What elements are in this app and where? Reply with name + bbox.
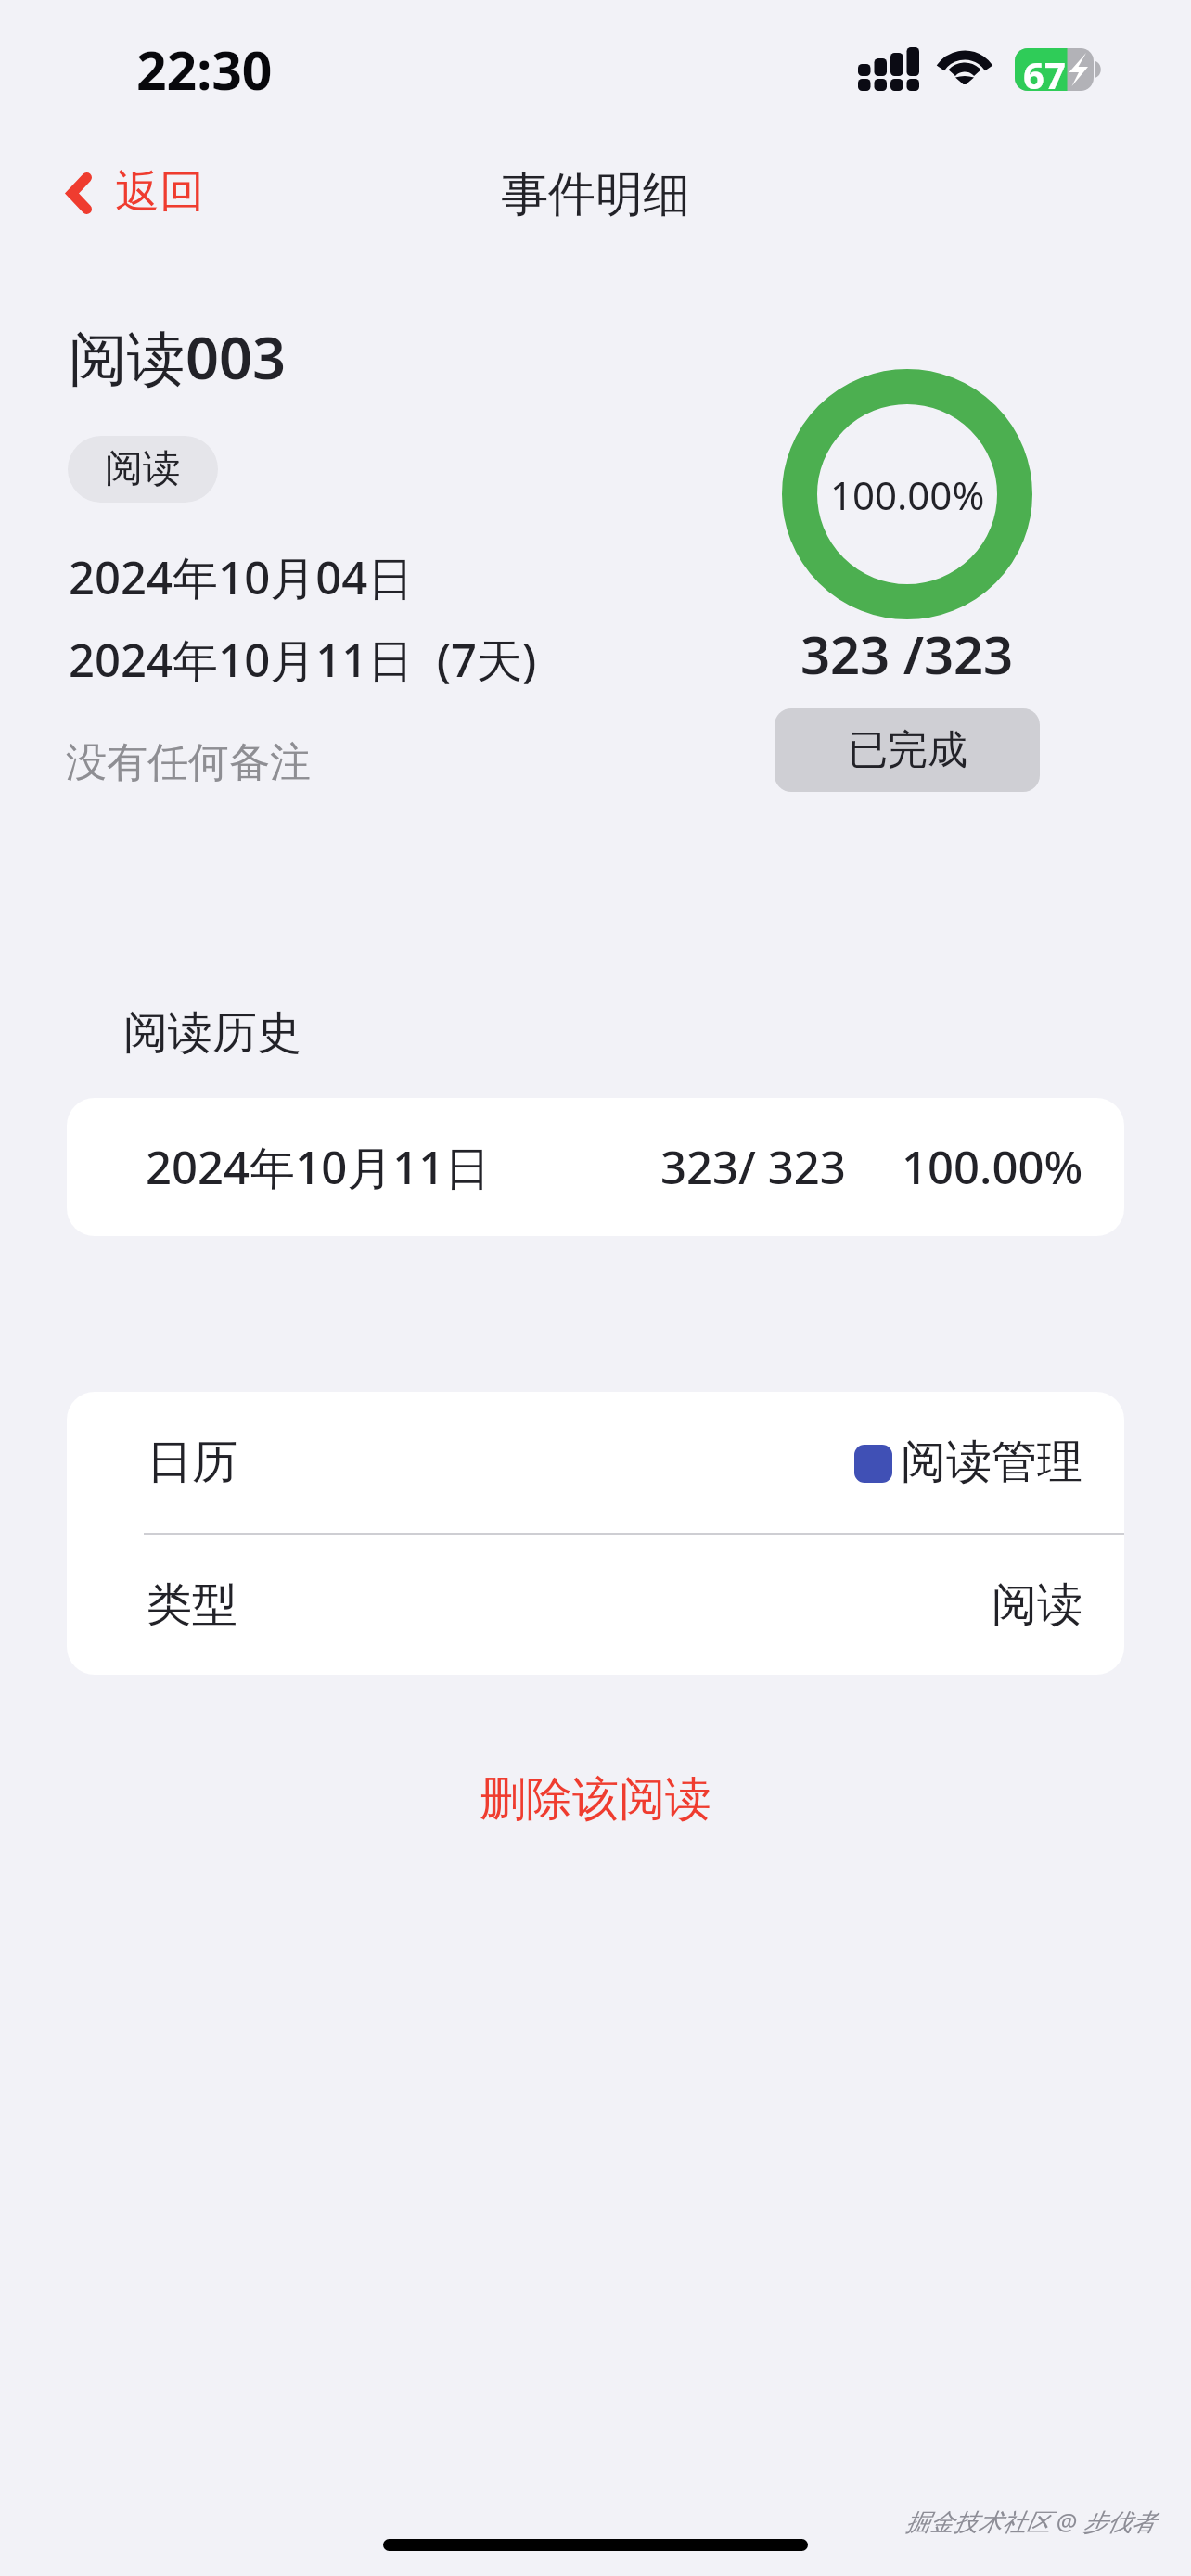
button[interactable]: 阅读 [68,436,218,503]
button[interactable]: 2024年10月11日 [67,1098,1124,1236]
staticText: 阅读 [992,1576,1082,1634]
staticText: 类型 [147,1576,237,1634]
staticText: 返回 [115,164,204,220]
staticText: 100.00% [902,1136,1083,1198]
staticText: 100.00% [830,468,985,521]
staticText: 2024年10月11日 [146,1136,491,1198]
staticText: 323 /323 [800,618,1014,689]
staticText: 2024年10月04日 [69,546,414,608]
staticText: 掘金技术社区 @ 步伐者 [905,2505,1156,2538]
button[interactable]: 已完成 [775,708,1040,792]
button[interactable]: 返回 [47,159,217,226]
staticText: 阅读管理 [901,1434,1082,1491]
staticText: 日历 [147,1434,237,1491]
staticText: 阅读003 [69,317,287,397]
staticText: 67 [1023,49,1066,92]
button[interactable]: 类型 [67,1535,1124,1675]
button[interactable]: 日历 [67,1392,1124,1533]
button[interactable]: 删除该阅读 [424,1753,767,1845]
staticText: 已完成 [848,725,967,775]
staticText: 2024年10月11日 (7天) [69,629,537,691]
staticText: 阅读历史 [123,1005,301,1061]
staticText: 阅读 [105,445,181,493]
staticText: 没有任何备注 [66,737,311,788]
staticText: 323/ 323 [660,1136,846,1198]
staticText: 事件明细 [501,165,690,224]
staticText: 22:30 [136,33,273,106]
staticText: 删除该阅读 [480,1770,711,1829]
